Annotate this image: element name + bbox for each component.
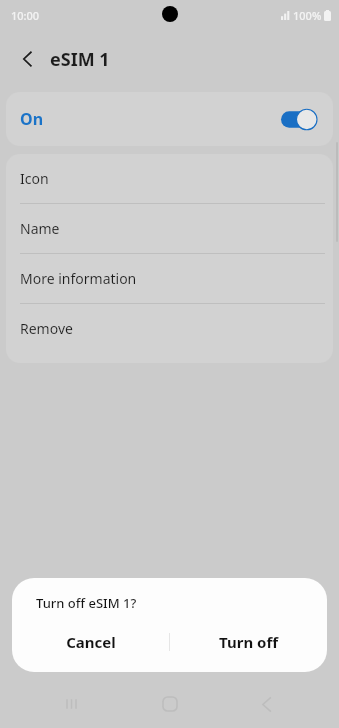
staticText: 10:00 <box>11 8 40 23</box>
staticText: Turn off <box>219 632 278 652</box>
button[interactable]: Remove <box>6 304 333 353</box>
button[interactable]: Icon <box>6 154 333 203</box>
button[interactable]: Turn off <box>170 622 327 662</box>
staticText: Remove <box>20 319 73 338</box>
button[interactable]: Name <box>6 204 333 253</box>
button[interactable]: Cancel <box>12 622 169 662</box>
staticText: 100% <box>293 8 322 23</box>
staticText: Icon <box>20 169 49 188</box>
button[interactable]: Back <box>10 41 46 77</box>
staticText: Cancel <box>66 632 116 652</box>
staticText: More information <box>20 269 137 288</box>
button[interactable]: More information <box>6 254 333 303</box>
button[interactable]: On <box>6 92 333 146</box>
staticText: Turn off eSIM 1? <box>36 594 137 612</box>
staticText: eSIM 1 <box>50 47 110 72</box>
staticText: On <box>20 108 44 130</box>
staticText: Name <box>20 219 60 238</box>
